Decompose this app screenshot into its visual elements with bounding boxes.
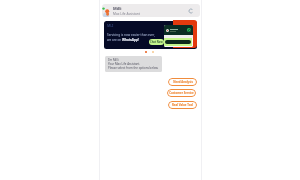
button[interactable]: I'm Milli Your Max Life Assistant. Pleas…: [105, 56, 162, 72]
button[interactable]: [104, 21, 197, 49]
button[interactable]: Refresh: [187, 7, 194, 14]
staticText: Real Value Tool: [172, 103, 193, 107]
button[interactable]: Milli: [102, 4, 200, 17]
staticText: Customer Service: [169, 91, 194, 95]
button[interactable]: Chat Now: [149, 39, 164, 45]
staticText: MLI: [107, 23, 114, 28]
staticText: Chat Now: [150, 40, 163, 44]
button[interactable]: Real Value Tool: [168, 101, 197, 109]
button[interactable]: Need Analysis: [168, 78, 197, 86]
staticText: I'm Milli Your Max Life Assistant. Pleas…: [108, 58, 159, 70]
staticText: Max Life Assistant: [113, 12, 140, 16]
staticText: Milli: [113, 6, 122, 11]
staticText: Servicing is now easier than ever, we ar…: [107, 33, 155, 42]
button[interactable]: Customer Service: [167, 89, 196, 97]
staticText: Need Analysis: [173, 80, 193, 84]
